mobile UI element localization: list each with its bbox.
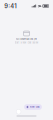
staticText: New chat — [30, 106, 40, 108]
staticText: 9:41 — [4, 2, 16, 10]
button[interactable]: New chat — [24, 104, 42, 110]
button[interactable]: Compose — [16, 109, 21, 114]
staticText: Start a new chat below — [14, 41, 38, 44]
staticText: No conversations yet — [16, 38, 37, 41]
